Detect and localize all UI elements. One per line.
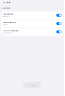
staticText: Time Sensitive Alerts — [3, 21, 16, 23]
staticText: Notifications — [3, 7, 11, 9]
staticText: 9:41 — [3, 2, 6, 3]
staticText: Always — [3, 24, 8, 26]
button[interactable]: Allow Notifications — [1, 11, 63, 19]
button[interactable]: Announce Notifications — [1, 28, 63, 36]
staticText: ‹ — [1, 6, 2, 10]
staticText: Learn More — [27, 84, 36, 86]
staticText: Headphones — [3, 32, 13, 34]
staticText: Allow Notifications — [3, 13, 14, 15]
button[interactable]: ‹ — [1, 6, 11, 10]
button[interactable]: Learn More — [23, 82, 41, 88]
button[interactable]: Time Sensitive Alerts — [1, 20, 63, 28]
staticText: Announce Notifications — [3, 30, 19, 31]
staticText: Banners — [3, 16, 10, 17]
